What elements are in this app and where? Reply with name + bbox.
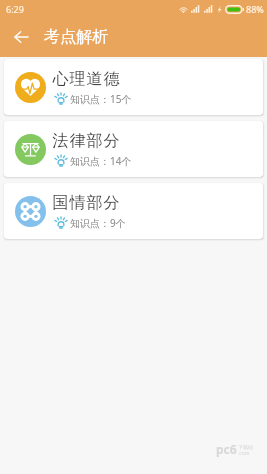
staticText: 88% [246,3,264,15]
staticText: 下载站 [238,444,253,450]
staticText: 心理道德 [52,69,120,89]
staticText: .com [238,450,250,457]
staticText: 考点解析 [44,27,108,47]
staticText: 知识点：15个 [70,92,132,106]
staticText: 知识点：14个 [70,154,132,168]
staticText: 知识点：9个 [70,216,126,230]
staticText: 6:29 [6,3,24,15]
button[interactable]: 国情部分 [4,183,263,239]
staticText: 法律部分 [52,131,120,151]
staticText: 国情部分 [52,193,120,213]
staticText: pc6 [216,441,237,457]
button[interactable]: Back [0,17,36,57]
button[interactable]: 法律部分 [4,121,263,177]
button[interactable]: 心理道德 [4,59,263,115]
